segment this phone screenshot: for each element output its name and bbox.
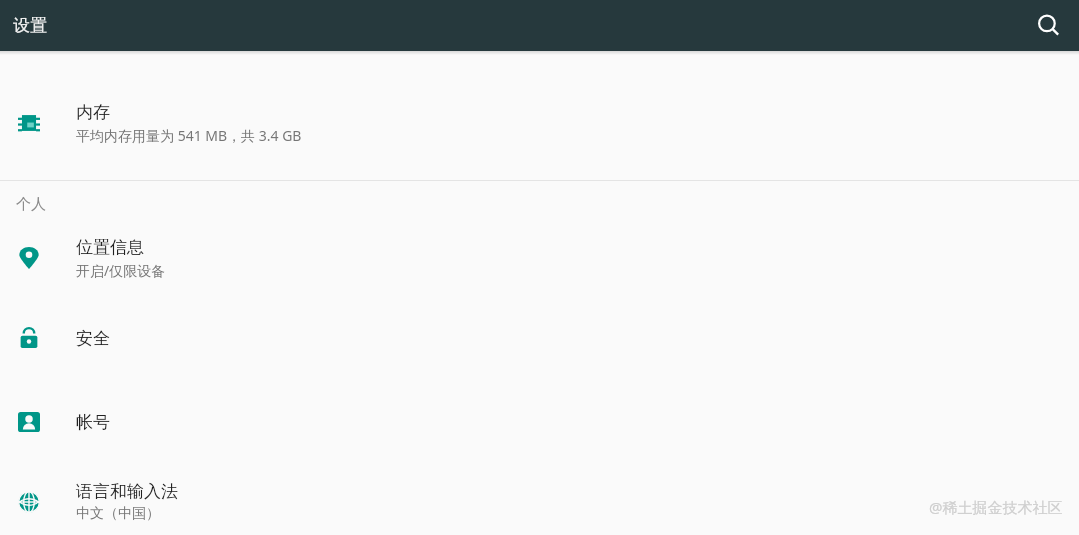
staticText: 个人 [16,195,46,214]
staticText: 位置信息 [76,237,144,258]
staticText: 中文（中国） [76,505,160,523]
button[interactable]: 帐号 [0,397,1079,447]
staticText: 平均内存用量为 541 MB，共 3.4 GB [76,126,302,145]
staticText: 内存 [76,102,110,123]
button[interactable]: Search [1027,4,1071,48]
staticText: 帐号 [76,412,110,433]
staticText: 安全 [76,328,110,349]
staticText: @稀土掘金技术社区 [929,497,1063,517]
button[interactable]: 内存 [0,92,1079,154]
staticText: 开启/仅限设备 [76,261,166,280]
staticText: 设置 [13,15,47,36]
button[interactable]: 安全 [0,313,1079,363]
staticText: 语言和输入法 [76,481,178,502]
button[interactable]: 位置信息 [0,227,1079,289]
button[interactable]: 语言和输入法 [0,471,1079,533]
